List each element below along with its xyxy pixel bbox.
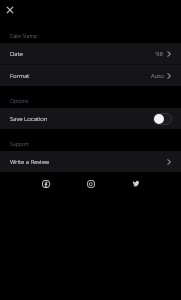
button[interactable]: Twitter (125, 173, 147, 195)
staticText: Support (10, 140, 29, 147)
button[interactable]: Save Location (0, 108, 181, 129)
button[interactable]: Close (3, 3, 17, 17)
button[interactable]: Facebook (35, 173, 57, 195)
button[interactable]: Instagram (80, 173, 102, 195)
button[interactable]: Format (0, 65, 181, 86)
staticText: Date Stamp (10, 32, 38, 39)
staticText: Write a Review (10, 157, 49, 165)
button[interactable]: Date (0, 43, 181, 64)
staticText: Auto (151, 71, 164, 79)
staticText: '98 (155, 49, 164, 57)
staticText: Format (10, 71, 30, 79)
staticText: Date (10, 49, 23, 57)
button[interactable]: Write a Review (0, 151, 181, 172)
staticText: Options (10, 97, 29, 104)
staticText: Save Location (10, 114, 48, 122)
